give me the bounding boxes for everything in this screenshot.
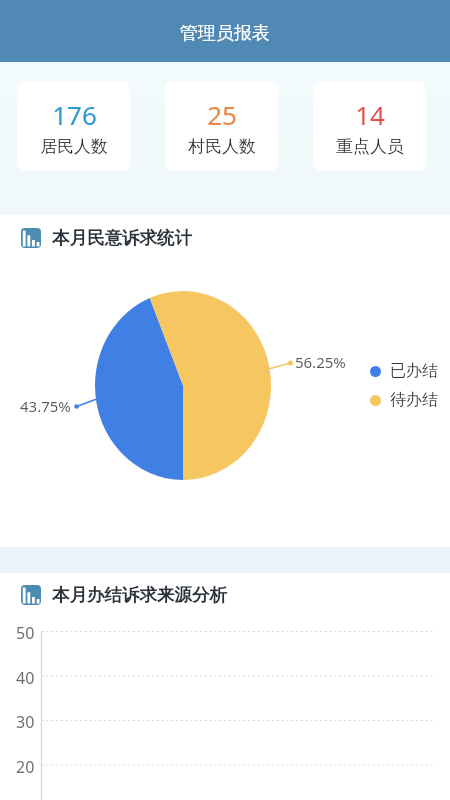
- button[interactable]: 176: [17, 81, 130, 171]
- staticText: 176: [52, 97, 97, 132]
- button[interactable]: 待办结: [370, 390, 438, 410]
- staticText: 56.25%: [295, 352, 346, 372]
- staticText: 14: [355, 97, 385, 132]
- staticText: 本月民意诉求统计: [52, 227, 192, 249]
- staticText: 25: [207, 97, 237, 132]
- button[interactable]: 25: [165, 81, 278, 171]
- staticText: 管理员报表: [180, 22, 270, 45]
- staticText: 已办结: [390, 361, 438, 381]
- staticText: 30: [16, 711, 35, 733]
- staticText: 20: [16, 756, 35, 778]
- button[interactable]: 14: [313, 81, 426, 171]
- button[interactable]: 图表: [21, 584, 227, 606]
- staticText: 重点人员: [336, 136, 404, 157]
- staticText: 40: [16, 667, 35, 689]
- other: 图表: [21, 585, 41, 605]
- staticText: 待办结: [390, 390, 438, 410]
- staticText: 居民人数: [40, 136, 108, 157]
- staticText: 43.75%: [20, 396, 71, 416]
- button[interactable]: 图表: [21, 227, 192, 249]
- other: 图表: [21, 228, 41, 248]
- staticText: 村民人数: [188, 136, 256, 157]
- button[interactable]: 已办结: [370, 361, 438, 381]
- staticText: 50: [16, 622, 35, 644]
- staticText: 本月办结诉求来源分析: [52, 584, 227, 606]
